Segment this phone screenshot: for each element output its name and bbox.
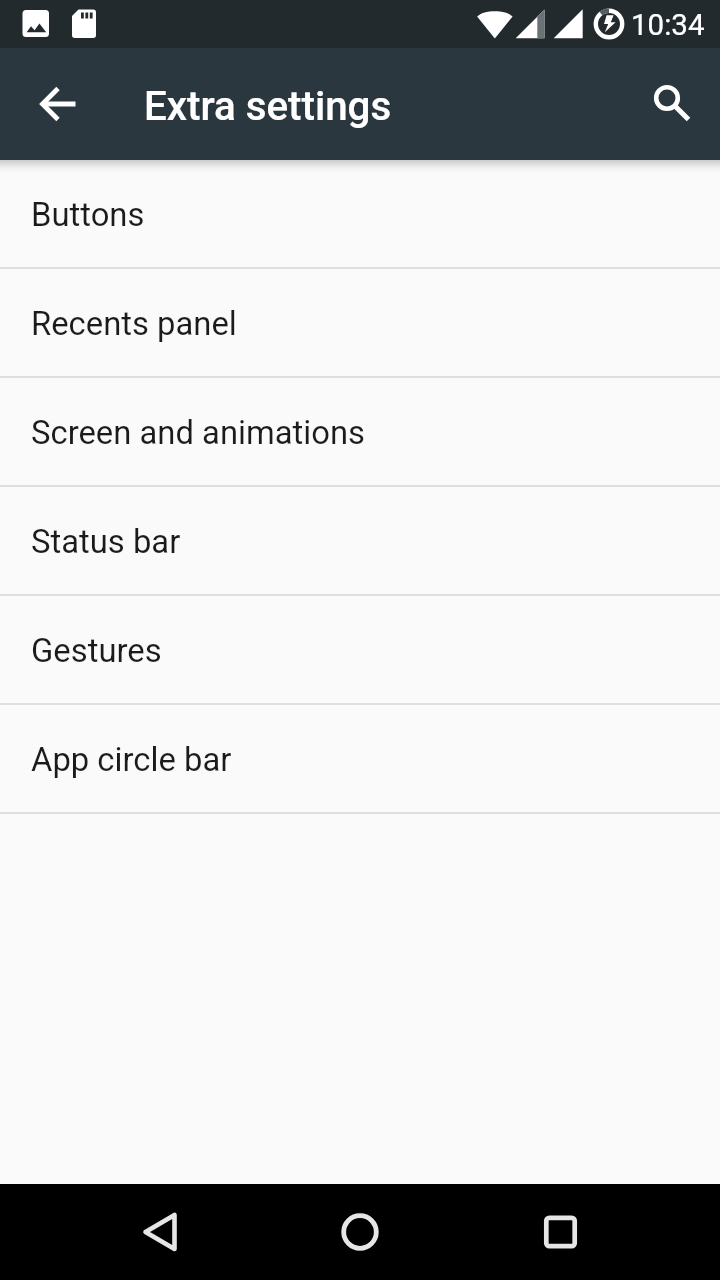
staticText: Screen and animations [31,414,366,452]
button[interactable]: Screen and animations [0,378,720,487]
button[interactable]: Recent apps [516,1184,612,1280]
button[interactable]: Buttons [0,160,720,269]
button[interactable]: Back [108,1184,204,1280]
button[interactable]: Search [636,72,700,136]
button[interactable]: Recents panel [0,269,720,378]
staticText: Extra settings [144,83,392,130]
button[interactable]: Gestures [0,596,720,705]
button[interactable]: App circle bar [0,705,720,814]
staticText: Status bar [31,523,181,561]
button[interactable]: Status bar [0,487,720,596]
staticText: Buttons [31,196,145,234]
staticText: Gestures [31,632,162,670]
button[interactable]: Navigate up [24,72,88,136]
staticText: App circle bar [31,741,232,779]
staticText: Recents panel [31,305,237,343]
button[interactable]: Home [312,1184,408,1280]
staticText: 10:34 [631,8,705,43]
